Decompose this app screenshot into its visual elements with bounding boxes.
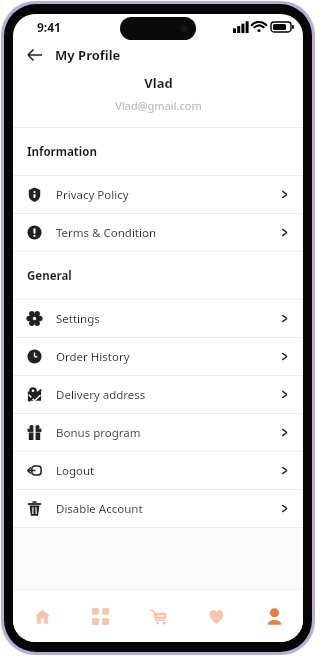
staticText: Terms & Condition [56, 225, 157, 241]
staticText: Order History [56, 349, 130, 365]
staticText: Vlad@gmail.com [115, 98, 202, 113]
button[interactable]: Settings [13, 300, 303, 337]
staticText: Privacy Policy [56, 187, 129, 203]
button[interactable]: Disable Account [13, 490, 303, 527]
staticText: Bonus program [56, 425, 141, 441]
button[interactable]: Home [13, 590, 71, 642]
staticText: General [27, 268, 72, 284]
staticText: Information [27, 144, 97, 160]
button[interactable]: Logout [13, 452, 303, 489]
button[interactable]: Favorites [187, 590, 245, 642]
button[interactable]: Profile [245, 590, 303, 642]
button[interactable]: Bonus program [13, 414, 303, 451]
button[interactable]: Delivery address [13, 376, 303, 413]
button[interactable]: Cart [129, 590, 187, 642]
staticText: Vlad [144, 74, 173, 92]
staticText: 9:41 [37, 19, 61, 35]
staticText: Settings [56, 311, 100, 327]
button[interactable]: Order History [13, 338, 303, 375]
staticText: Disable Account [56, 501, 143, 517]
button[interactable]: Privacy Policy [13, 176, 303, 213]
staticText: My Profile [55, 46, 121, 64]
button[interactable]: Terms & Condition [13, 214, 303, 251]
staticText: Delivery address [56, 387, 146, 403]
button[interactable]: Categories [71, 590, 129, 642]
button[interactable]: Back [21, 41, 49, 69]
staticText: Logout [56, 463, 95, 479]
